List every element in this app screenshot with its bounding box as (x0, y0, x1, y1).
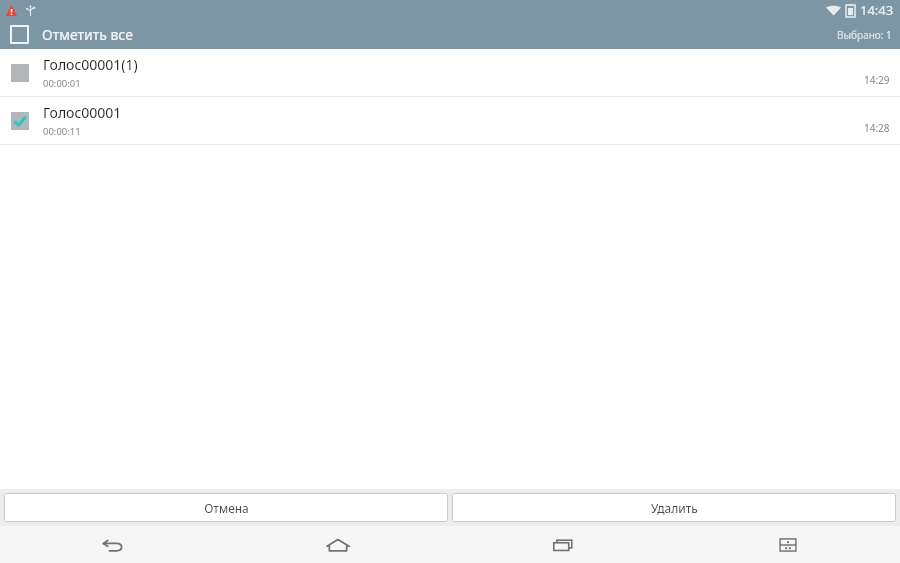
staticText: Отмена (204, 500, 249, 516)
staticText: 00:00:01 (43, 77, 81, 90)
button[interactable]: Recent apps (450, 526, 675, 563)
staticText: Выбрано: 1 (837, 28, 892, 42)
staticText: 14:43 (860, 1, 894, 19)
staticText: 00:00:11 (43, 125, 81, 138)
staticText: Голос00001 (43, 103, 122, 122)
button[interactable]: Home (225, 526, 450, 563)
button[interactable]: Отмена (4, 493, 448, 522)
button[interactable]: Голос00001(1) (0, 49, 900, 96)
staticText: Голос00001(1) (43, 55, 138, 74)
button[interactable]: Split screen (675, 526, 900, 563)
staticText: 14:29 (864, 73, 890, 87)
button[interactable]: Удалить (452, 493, 896, 522)
button[interactable]: Back (0, 526, 225, 563)
staticText: 14:28 (864, 121, 890, 135)
staticText: Отметить все (42, 25, 133, 44)
staticText: Удалить (651, 500, 698, 516)
button[interactable]: Отметить все (0, 23, 145, 46)
button[interactable]: Голос00001 (0, 97, 900, 144)
